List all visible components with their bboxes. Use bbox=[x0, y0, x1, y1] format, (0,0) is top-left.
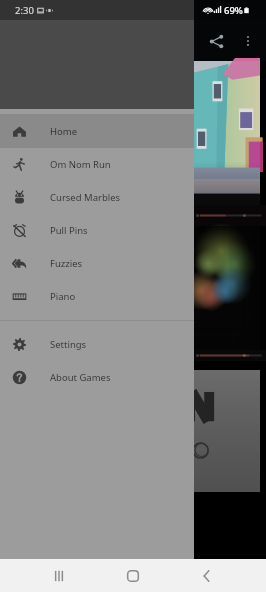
staticText: Pull Pins bbox=[50, 224, 88, 237]
staticText: Piano bbox=[50, 290, 76, 303]
staticText: Cursed Marbles bbox=[50, 191, 121, 204]
button[interactable]: Home bbox=[0, 114, 194, 148]
staticText: Fuzzies bbox=[50, 257, 83, 270]
staticText: Settings bbox=[50, 338, 87, 351]
staticText: Om Nom Run bbox=[50, 158, 111, 171]
button[interactable]: Recent apps bbox=[22, 559, 96, 592]
button[interactable]: Share bbox=[201, 26, 231, 56]
button[interactable]: Piano bbox=[0, 280, 194, 313]
button[interactable]: Back bbox=[170, 559, 244, 592]
staticText: 2:30 bbox=[15, 4, 34, 17]
staticText: 69% bbox=[224, 4, 243, 17]
button[interactable]: Pull Pins bbox=[0, 214, 194, 247]
staticText: About Games bbox=[50, 371, 111, 384]
button[interactable]: Om Nom Run bbox=[0, 148, 194, 181]
button[interactable]: Fuzzies bbox=[0, 247, 194, 280]
button[interactable]: About Games bbox=[0, 361, 194, 394]
button[interactable]: More options bbox=[233, 26, 263, 56]
staticText: Home bbox=[50, 125, 78, 138]
button[interactable]: Home bbox=[96, 559, 170, 592]
button[interactable]: Cursed Marbles bbox=[0, 181, 194, 214]
button[interactable]: Settings bbox=[0, 328, 194, 361]
